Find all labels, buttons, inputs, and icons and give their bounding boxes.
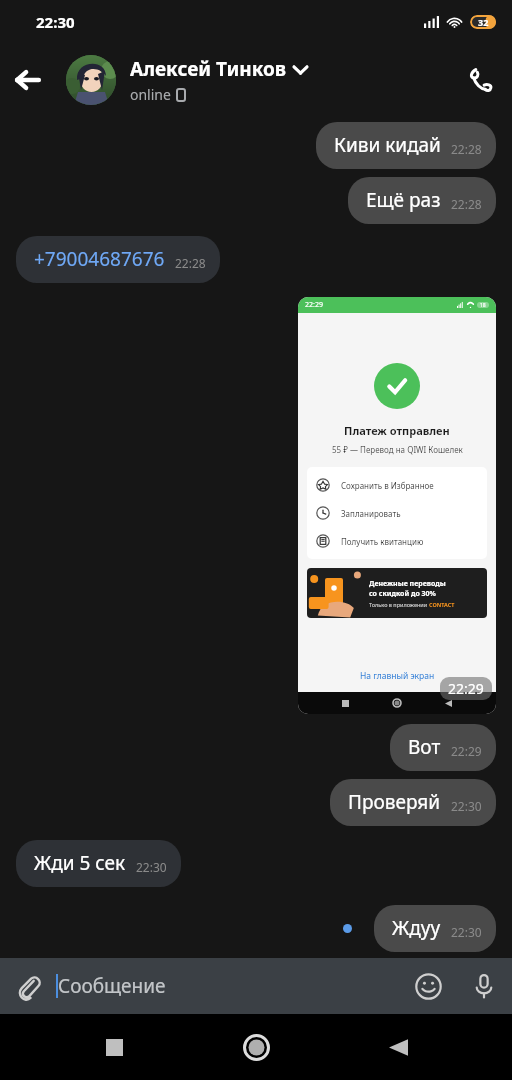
button[interactable]: Recent apps xyxy=(86,1019,142,1075)
button[interactable]: Алексей Тинков xyxy=(130,56,450,104)
button[interactable]: Получить квитанцию xyxy=(307,527,487,555)
staticText: 32 xyxy=(478,16,489,28)
staticText: Получить квитанцию xyxy=(341,536,424,547)
staticText: 18 xyxy=(480,302,486,308)
staticText: 22:28 xyxy=(451,141,482,157)
button[interactable]: Back xyxy=(370,1019,426,1075)
button[interactable]: Back xyxy=(0,52,56,108)
button[interactable]: Киви кидай xyxy=(316,122,496,169)
staticText: Денежные переводы xyxy=(369,579,446,589)
button[interactable]: Сообщение xyxy=(56,973,400,999)
button[interactable]: Жди 5 сек xyxy=(16,840,181,887)
staticText: 22:29 xyxy=(451,743,482,759)
staticText: Запланировать xyxy=(341,508,401,519)
staticText: Проверяй xyxy=(348,789,441,815)
staticText: 22:30 xyxy=(451,924,482,940)
button[interactable]: +79004687676 xyxy=(16,236,220,283)
staticText: со скидкой до 30% xyxy=(369,589,436,599)
staticText: Сообщение xyxy=(58,973,166,999)
button[interactable]: Сохранить в Избранное xyxy=(307,471,487,499)
staticText: Ещё раз xyxy=(366,187,441,213)
staticText: 22:28 xyxy=(451,196,482,212)
staticText: Только в приложении xyxy=(369,601,429,608)
button[interactable]: Voice message xyxy=(456,958,512,1014)
button[interactable]: Emoji xyxy=(400,958,456,1014)
staticText: 22:30 xyxy=(451,798,482,814)
button[interactable]: Profile photo xyxy=(66,55,116,105)
staticText: Платеж отправлен xyxy=(344,423,450,438)
staticText: 22:29 xyxy=(448,679,484,698)
staticText: 22:29 xyxy=(305,300,323,310)
button[interactable]: Attach file xyxy=(0,958,56,1014)
button[interactable]: Проверяй xyxy=(330,779,496,826)
staticText: Жди 5 сек xyxy=(34,850,126,876)
staticText: Сохранить в Избранное xyxy=(341,480,434,491)
staticText: 22:30 xyxy=(36,12,75,32)
staticText: 22:28 xyxy=(175,255,206,271)
staticText: Киви кидай xyxy=(334,132,441,158)
staticText: 55 ₽ — Перевод на QIWI Кошелек xyxy=(332,444,463,455)
button[interactable]: Вот xyxy=(390,724,496,771)
staticText: 22:30 xyxy=(136,859,167,875)
button[interactable]: Ждуу xyxy=(374,905,496,952)
button[interactable]: На главный экран xyxy=(360,670,435,682)
button[interactable]: Payment screenshot xyxy=(298,297,496,714)
button[interactable]: Запланировать xyxy=(307,499,487,527)
staticText: Алексей Тинков xyxy=(130,56,287,82)
staticText: CONTACT xyxy=(429,601,455,608)
staticText: Ждуу xyxy=(392,915,441,941)
staticText: Вот xyxy=(408,734,441,760)
staticText: online xyxy=(130,85,171,104)
button[interactable]: Home xyxy=(228,1019,284,1075)
button[interactable]: Ещё раз xyxy=(348,177,496,224)
staticText: +79004687676 xyxy=(34,246,165,272)
button[interactable]: Call xyxy=(450,49,512,111)
